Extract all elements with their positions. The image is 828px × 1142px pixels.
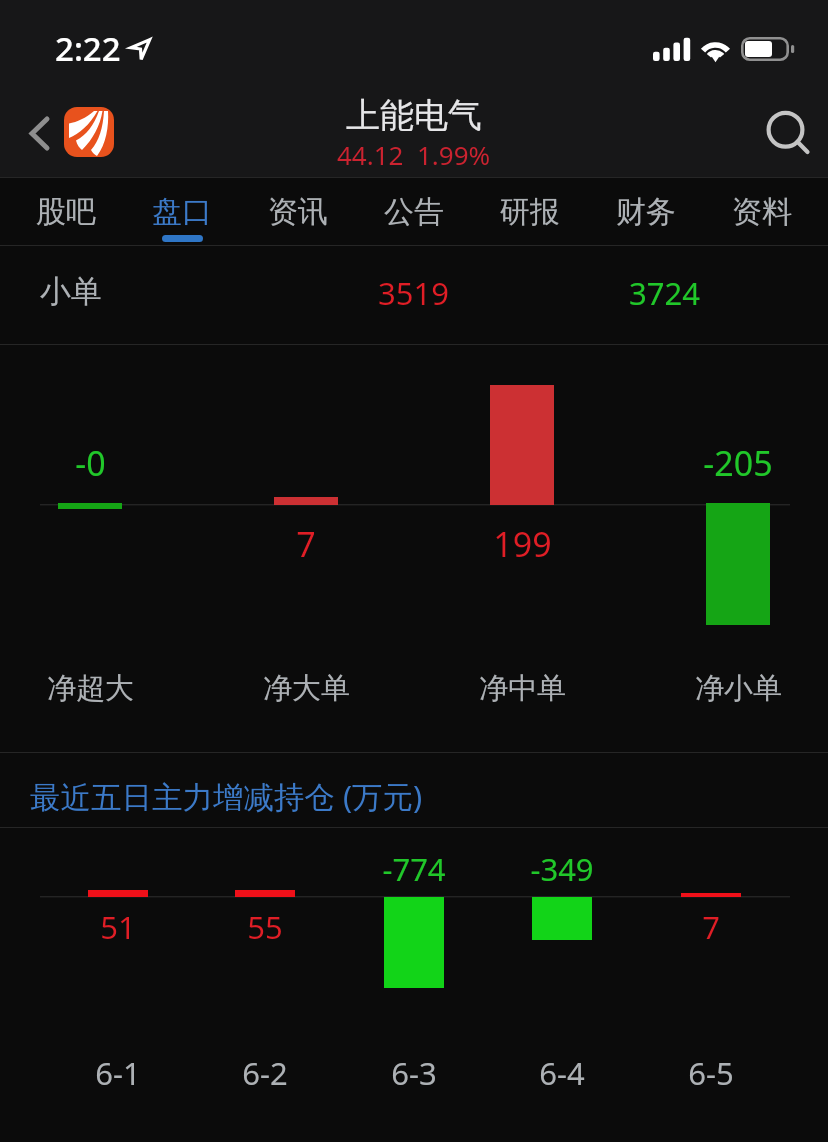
staticText: 净中单 (479, 670, 566, 707)
staticText: 3724 (629, 272, 700, 314)
staticText: 6-1 (95, 1052, 141, 1094)
staticText: 研报 (500, 193, 560, 231)
staticText: 44.12 1.99% (337, 137, 491, 172)
staticText: 净超大 (47, 670, 134, 707)
button[interactable]: Search (752, 94, 824, 156)
staticText: 盘口 (152, 193, 212, 231)
button[interactable]: 小单 (0, 246, 828, 345)
staticText: 股吧 (36, 193, 96, 231)
staticText: 小单 (40, 272, 102, 311)
staticText: 199 (493, 521, 552, 567)
staticText: 55 (247, 906, 283, 948)
staticText: 2:22 (55, 26, 121, 71)
button[interactable]: 资讯 (268, 178, 328, 246)
staticText: 净小单 (695, 670, 782, 707)
staticText: 6-5 (688, 1052, 734, 1094)
staticText: -349 (530, 848, 594, 890)
button[interactable]: 资料 (732, 178, 792, 246)
button[interactable]: 研报 (500, 178, 560, 246)
button[interactable]: 最近五日主力增减持仓 (万元) (0, 753, 828, 828)
button[interactable]: Back (14, 100, 64, 166)
staticText: 财务 (616, 193, 676, 231)
staticText: 上能电气 (346, 94, 482, 137)
staticText: 7 (296, 521, 316, 567)
button[interactable]: 财务 (616, 178, 676, 246)
staticText: 6-3 (391, 1052, 437, 1094)
staticText: 公告 (384, 193, 444, 231)
staticText: 最近五日主力增减持仓 (万元) (30, 775, 423, 817)
staticText: 资料 (732, 193, 792, 231)
staticText: -0 (75, 440, 106, 486)
button[interactable]: 盘口 (152, 178, 212, 246)
staticText: 7 (702, 906, 720, 948)
button[interactable]: 股吧 (36, 178, 96, 246)
button[interactable]: 公告 (384, 178, 444, 246)
staticText: 资讯 (268, 193, 328, 231)
staticText: 51 (100, 906, 136, 948)
staticText: 6-2 (242, 1052, 288, 1094)
staticText: 净大单 (263, 670, 350, 707)
staticText: -205 (703, 440, 773, 486)
staticText: -774 (382, 848, 446, 890)
button[interactable]: App logo (64, 107, 114, 157)
staticText: 3519 (378, 272, 449, 314)
staticText: 6-4 (539, 1052, 585, 1094)
